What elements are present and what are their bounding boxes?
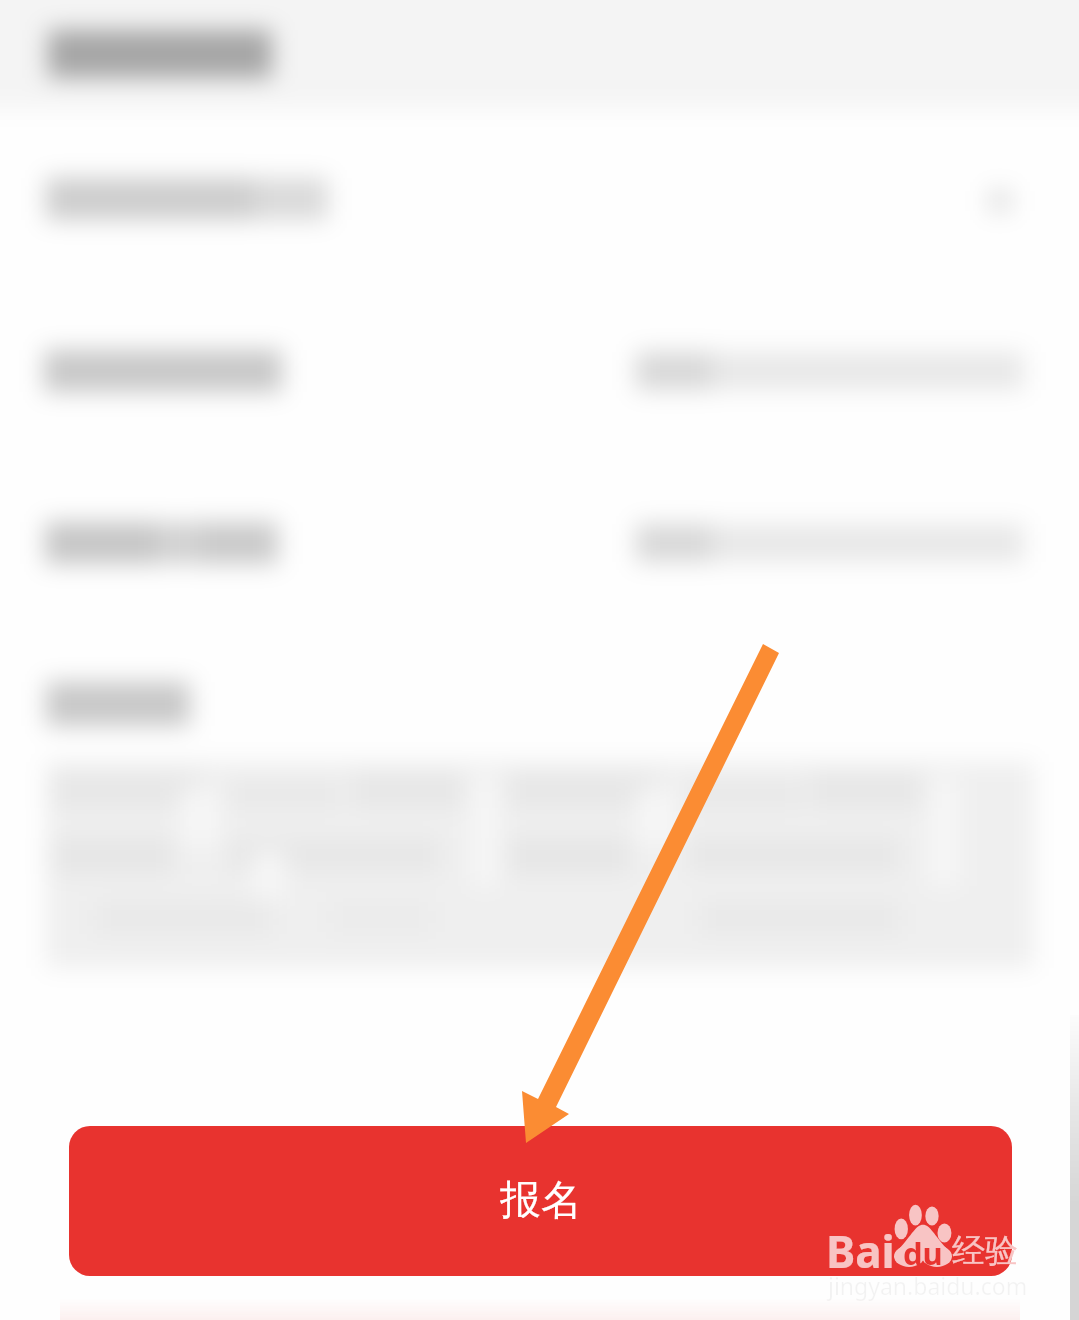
staticText: Bai <box>826 1221 895 1281</box>
staticText: du <box>903 1232 943 1274</box>
button[interactable]: Detail row 1 <box>0 110 1070 282</box>
button[interactable]: 报名 <box>69 1126 1012 1276</box>
other: Baidu logo <box>894 1204 952 1267</box>
staticText: jingyan.baidu.com <box>828 1270 1028 1301</box>
button[interactable]: Detail row 3 <box>0 454 1070 626</box>
staticText: 报名 <box>500 1175 582 1227</box>
button[interactable]: Detail row 2 <box>0 282 1070 454</box>
other: Arrow pointing at the sign-up button <box>0 0 1079 1320</box>
staticText: 经验 <box>952 1230 1018 1272</box>
